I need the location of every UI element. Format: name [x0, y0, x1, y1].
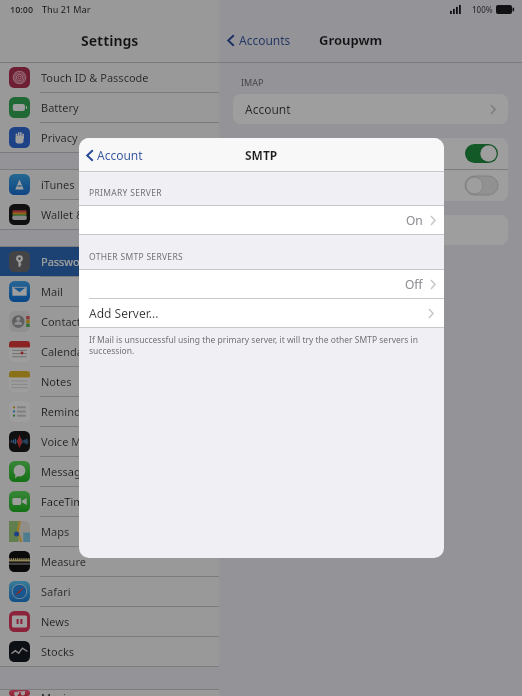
button[interactable]: Off	[79, 270, 444, 298]
button[interactable]: Add Server...	[79, 299, 444, 327]
staticText: IMAP	[241, 76, 264, 88]
staticText: Touch ID & Passcode	[41, 70, 149, 85]
button[interactable]: Mail	[0, 277, 219, 306]
staticText: Voice Memos	[41, 434, 110, 449]
button[interactable]: Account	[233, 94, 508, 124]
button[interactable]: Measure	[0, 547, 219, 576]
button[interactable]: Wallet & Apple Pay	[0, 200, 219, 229]
staticText: Battery	[41, 100, 79, 115]
button[interactable]: Messages	[0, 457, 219, 486]
button[interactable]: Accounts	[227, 32, 291, 48]
staticText: Settings	[81, 31, 139, 50]
staticText: Add Server...	[89, 305, 159, 321]
staticText: Contacts	[41, 314, 87, 329]
other: Toggle on	[465, 144, 498, 163]
staticText: If Mail is unsuccessful using the primar…	[89, 334, 432, 356]
button[interactable]: Stocks	[0, 637, 219, 666]
staticText: Wallet & Apple Pay	[41, 207, 138, 222]
staticText: Groupwm	[319, 31, 383, 49]
staticText: Reminders	[41, 404, 97, 419]
other: Toggle off	[465, 176, 498, 195]
button[interactable]: Maps	[0, 517, 219, 546]
staticText: Privacy	[41, 130, 78, 145]
staticText: Accounts	[239, 32, 291, 48]
staticText: iTunes	[41, 177, 75, 192]
button[interactable]: Touch ID & Passcode	[0, 63, 219, 92]
button[interactable]: Passwords & Accounts	[0, 247, 219, 276]
button[interactable]	[233, 215, 508, 245]
button[interactable]: Toggle off	[233, 170, 508, 201]
button[interactable]: Safari	[0, 577, 219, 606]
button[interactable]: Toggle on	[233, 138, 508, 169]
button[interactable]: Reminders	[0, 397, 219, 426]
staticText: Account	[97, 147, 143, 163]
staticText: Music	[41, 690, 72, 696]
staticText: On	[406, 212, 423, 228]
staticText: Mail	[41, 284, 63, 299]
button[interactable]: News	[0, 607, 219, 636]
staticText: 100%	[472, 4, 493, 15]
staticText: FaceTime	[41, 494, 90, 509]
button[interactable]: Privacy	[0, 123, 219, 152]
staticText: Account	[245, 101, 291, 117]
staticText: OTHER SMTP SERVERS	[89, 251, 183, 263]
staticText: 10:00	[10, 3, 34, 15]
button[interactable]: Calendar	[0, 337, 219, 366]
staticText: News	[41, 614, 70, 629]
button[interactable]: FaceTime	[0, 487, 219, 516]
button[interactable]: Contacts	[0, 307, 219, 336]
staticText: PRIMARY SERVER	[89, 187, 162, 199]
staticText: Notes	[41, 374, 72, 389]
staticText: Maps	[41, 524, 70, 539]
button[interactable]: Voice Memos	[0, 427, 219, 456]
staticText: Thu 21 Mar	[42, 3, 91, 15]
staticText: Off	[405, 276, 423, 292]
staticText: Passwords & Accounts	[41, 254, 157, 269]
staticText: Messages	[41, 464, 93, 479]
button[interactable]: Notes	[0, 367, 219, 396]
staticText: Calendar	[41, 344, 88, 359]
button[interactable]: Battery	[0, 93, 219, 122]
staticText: Measure	[41, 554, 86, 569]
staticText: Safari	[41, 584, 71, 599]
staticText: SMTP	[245, 147, 278, 163]
button[interactable]: Account	[86, 147, 143, 163]
button[interactable]: iTunes	[0, 170, 219, 199]
button[interactable]: Music	[0, 690, 219, 696]
button[interactable]: On	[79, 206, 444, 234]
staticText: Stocks	[41, 644, 75, 659]
